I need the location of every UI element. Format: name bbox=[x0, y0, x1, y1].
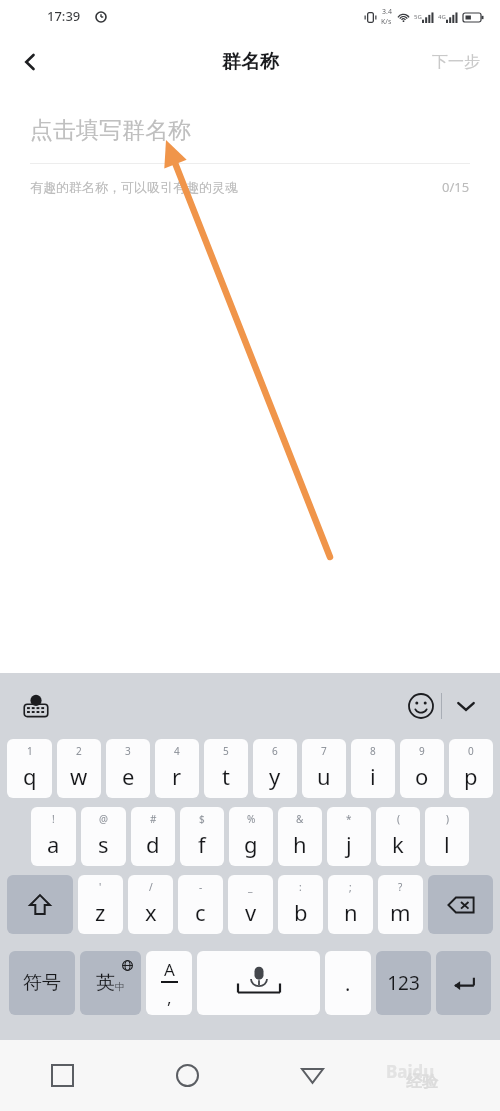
staticText: / bbox=[149, 880, 153, 894]
button[interactable]: 符号 bbox=[9, 951, 75, 1015]
staticText: r bbox=[172, 761, 182, 791]
button[interactable]: 123 bbox=[376, 951, 431, 1015]
button[interactable]: period bbox=[325, 951, 371, 1015]
staticText: 4G bbox=[438, 13, 446, 21]
staticText: t bbox=[222, 761, 230, 791]
staticText: Baidu bbox=[386, 1060, 435, 1083]
staticText: x bbox=[145, 897, 157, 927]
button[interactable]: & bbox=[278, 807, 322, 866]
button[interactable]: Back bbox=[0, 34, 60, 89]
staticText: _ bbox=[248, 880, 253, 894]
button[interactable]: @ bbox=[81, 807, 126, 866]
staticText: . bbox=[345, 970, 351, 997]
button[interactable]: 3 bbox=[106, 739, 150, 798]
staticText: e bbox=[122, 761, 135, 791]
staticText: h bbox=[293, 829, 307, 859]
button[interactable]: Emoji bbox=[401, 686, 441, 726]
staticText: 有趣的群名称，可以吸引有趣的灵魂 bbox=[30, 179, 442, 195]
staticText: u bbox=[317, 761, 331, 791]
staticText: ; bbox=[349, 880, 352, 894]
button[interactable]: Back bbox=[250, 1040, 375, 1111]
button[interactable]: 5 bbox=[204, 739, 248, 798]
staticText: i bbox=[370, 761, 376, 791]
button[interactable]: comma bbox=[146, 951, 192, 1015]
button[interactable]: lang bbox=[80, 951, 141, 1015]
staticText: A bbox=[164, 958, 175, 981]
staticText: 中 bbox=[115, 980, 125, 993]
staticText: ' bbox=[99, 880, 102, 894]
button[interactable]: 4 bbox=[155, 739, 199, 798]
button[interactable]: - bbox=[178, 875, 223, 934]
staticText: 群名称 bbox=[222, 50, 279, 74]
button[interactable]: ! bbox=[31, 807, 76, 866]
button[interactable]: 下一步 bbox=[412, 34, 500, 89]
staticText: K/s bbox=[381, 17, 392, 27]
button[interactable]: ' bbox=[78, 875, 123, 934]
staticText: 0/15 bbox=[442, 178, 470, 196]
staticText: q bbox=[23, 761, 37, 791]
staticText: 3 bbox=[125, 744, 131, 758]
button[interactable]: 2 bbox=[57, 739, 101, 798]
button[interactable]: ; bbox=[328, 875, 373, 934]
staticText: ! bbox=[52, 812, 55, 826]
button[interactable]: ? bbox=[378, 875, 423, 934]
staticText: ) bbox=[446, 812, 449, 826]
button[interactable]: Home bbox=[125, 1040, 250, 1111]
staticText: , bbox=[167, 986, 172, 1009]
staticText: w bbox=[70, 761, 88, 791]
staticText: z bbox=[95, 897, 106, 927]
button[interactable]: 8 bbox=[351, 739, 395, 798]
button[interactable]: # bbox=[131, 807, 175, 866]
staticText: 8 bbox=[370, 744, 376, 758]
staticText: 7 bbox=[321, 744, 327, 758]
button[interactable]: 6 bbox=[253, 739, 297, 798]
button[interactable]: ( bbox=[376, 807, 420, 866]
staticText: c bbox=[195, 897, 206, 927]
staticText: d bbox=[146, 829, 160, 859]
staticText: : bbox=[299, 880, 302, 894]
button[interactable]: * bbox=[327, 807, 371, 866]
staticText: 6 bbox=[272, 744, 278, 758]
button[interactable]: 0 bbox=[449, 739, 493, 798]
staticText: a bbox=[47, 829, 60, 859]
button[interactable]: / bbox=[128, 875, 173, 934]
button[interactable]: Input method bbox=[18, 688, 54, 724]
staticText: 5G bbox=[414, 13, 422, 21]
button[interactable]: shift bbox=[7, 875, 73, 934]
button[interactable]: : bbox=[278, 875, 323, 934]
button[interactable]: Hide keyboard bbox=[442, 682, 490, 730]
staticText: 0 bbox=[468, 744, 474, 758]
staticText: s bbox=[98, 829, 109, 859]
staticText: 9 bbox=[419, 744, 425, 758]
staticText: * bbox=[346, 812, 352, 826]
staticText: n bbox=[344, 897, 358, 927]
staticText: 17:39 bbox=[47, 7, 81, 25]
staticText: l bbox=[444, 829, 450, 859]
button[interactable]: 点击填写群名称 bbox=[30, 110, 470, 150]
button[interactable]: enter bbox=[436, 951, 491, 1015]
staticText: & bbox=[296, 812, 304, 826]
staticText: $ bbox=[199, 812, 205, 826]
button[interactable]: space bbox=[197, 951, 320, 1015]
staticText: @ bbox=[99, 812, 108, 826]
staticText: % bbox=[247, 812, 256, 826]
button[interactable]: _ bbox=[228, 875, 273, 934]
button[interactable]: del bbox=[428, 875, 493, 934]
staticText: j bbox=[346, 829, 352, 859]
staticText: y bbox=[269, 761, 281, 791]
button[interactable]: 7 bbox=[302, 739, 346, 798]
staticText: v bbox=[245, 897, 257, 927]
button[interactable]: ) bbox=[425, 807, 469, 866]
button[interactable]: Recents bbox=[0, 1040, 125, 1111]
button[interactable]: % bbox=[229, 807, 273, 866]
staticText: 点击填写群名称 bbox=[30, 116, 191, 145]
staticText: o bbox=[415, 761, 429, 791]
button[interactable]: 1 bbox=[7, 739, 52, 798]
staticText: g bbox=[244, 829, 258, 859]
button[interactable]: 9 bbox=[400, 739, 444, 798]
button[interactable]: $ bbox=[180, 807, 224, 866]
staticText: b bbox=[294, 897, 308, 927]
staticText: 下一步 bbox=[432, 52, 480, 72]
staticText: p bbox=[464, 761, 478, 791]
staticText: ? bbox=[398, 880, 403, 894]
